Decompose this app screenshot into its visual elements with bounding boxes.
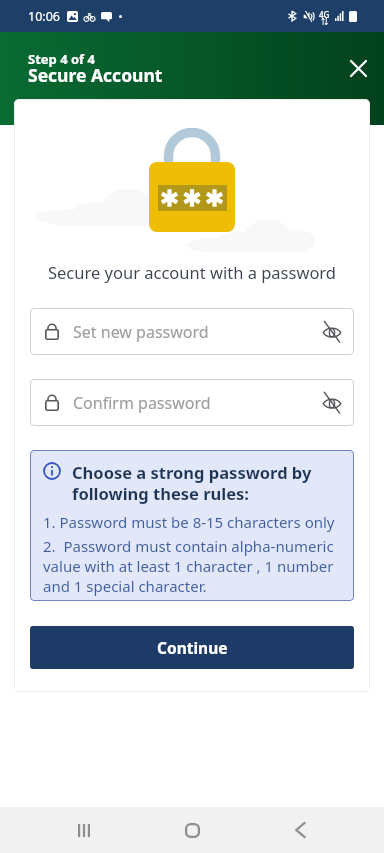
staticText: Secure your account with a password [14, 261, 370, 283]
staticText: Confirm password [73, 392, 211, 414]
staticText: Step 4 of 4 [28, 50, 95, 68]
staticText: 4G [319, 9, 330, 20]
button[interactable]: Show password [319, 319, 345, 345]
staticText: Set new password [73, 321, 209, 343]
staticText: Choose a strong password by following th… [72, 461, 322, 505]
button[interactable]: Home [138, 807, 246, 853]
staticText: 10:06 [28, 8, 60, 25]
staticText: Secure Account [28, 63, 163, 87]
button[interactable]: Show password [319, 390, 345, 416]
button[interactable]: Back [246, 807, 354, 853]
staticText: 2. Password must contain alpha-numeric v… [43, 536, 334, 596]
staticText: Continue [157, 637, 228, 658]
staticText: 1. Password must be 8-15 characters only [43, 512, 335, 532]
button[interactable]: Continue [30, 626, 354, 669]
button[interactable]: Recent apps [30, 807, 138, 853]
button[interactable]: Confirm password [30, 379, 354, 426]
button[interactable]: Close [340, 49, 376, 85]
button[interactable]: Set new password [30, 308, 354, 355]
